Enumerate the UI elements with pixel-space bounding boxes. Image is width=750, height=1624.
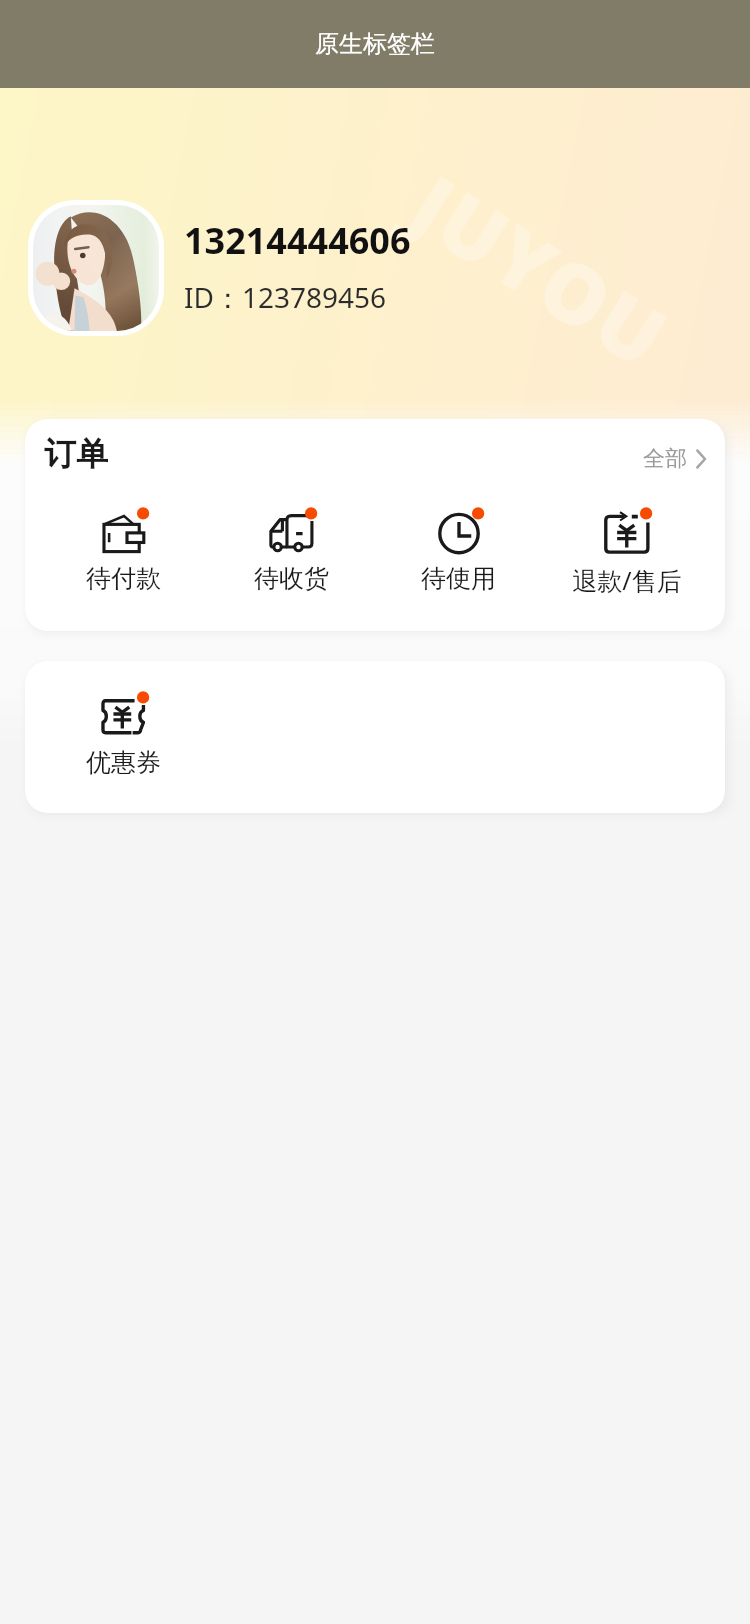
button[interactable]: 待收货 (208, 506, 375, 594)
staticText: 待付款 (86, 563, 161, 594)
button[interactable]: 待使用 (375, 506, 542, 594)
staticText: 优惠券 (86, 747, 161, 778)
button[interactable]: Profile avatar (0, 200, 750, 336)
staticText: 退款/售后 (572, 563, 682, 597)
staticText: 订单 (44, 434, 108, 474)
button[interactable]: 优惠券 (40, 690, 207, 778)
staticText: JUYOU (392, 148, 690, 392)
staticText: 待使用 (421, 563, 496, 594)
button[interactable]: Profile avatar (28, 200, 164, 336)
staticText: 原生标签栏 (315, 29, 435, 59)
button[interactable]: 退款/售后 (543, 506, 710, 597)
staticText: 全部 (643, 445, 687, 473)
staticText: ID：123789456 (184, 278, 387, 316)
staticText: 13214444606 (184, 216, 411, 265)
staticText: 待收货 (254, 563, 329, 594)
button[interactable]: 待付款 (40, 506, 207, 594)
button[interactable]: 全部 (643, 441, 706, 477)
